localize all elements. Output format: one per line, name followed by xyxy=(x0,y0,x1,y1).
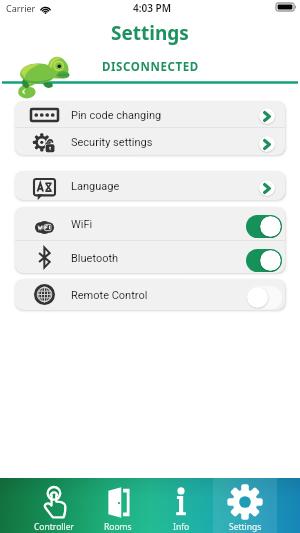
staticText: Security settings xyxy=(71,136,153,149)
button[interactable]: Info xyxy=(149,478,213,533)
button[interactable]: Switch off xyxy=(246,286,282,309)
button[interactable]: Switch on xyxy=(246,215,282,238)
button[interactable]: Language xyxy=(15,171,285,200)
button[interactable]: Remote Control xyxy=(15,279,285,310)
staticText: Bluetooth xyxy=(71,252,119,265)
button[interactable]: Security settings xyxy=(15,128,285,155)
staticText: Info xyxy=(173,521,190,533)
staticText: Controller xyxy=(34,521,75,533)
button[interactable]: Rooms xyxy=(86,478,149,533)
staticText: Settings xyxy=(229,521,262,533)
staticText: Rooms xyxy=(104,521,132,533)
button[interactable]: WiFi xyxy=(15,207,285,240)
button[interactable]: Switch on xyxy=(246,249,282,272)
staticText: Pin code changing xyxy=(71,109,162,122)
staticText: DISCONNECTED xyxy=(102,59,199,75)
staticText: WiFi xyxy=(71,218,93,231)
staticText: Remote Control xyxy=(71,289,148,302)
staticText: Language xyxy=(71,180,120,193)
button[interactable]: Bluetooth xyxy=(15,241,285,273)
button[interactable]: Pin code changing xyxy=(15,101,285,127)
button[interactable]: Controller xyxy=(23,478,86,533)
staticText: Settings xyxy=(111,20,189,46)
button[interactable]: Settings xyxy=(213,478,277,533)
staticText: Carrier xyxy=(6,2,36,14)
staticText: 4:03 PM xyxy=(133,1,171,15)
